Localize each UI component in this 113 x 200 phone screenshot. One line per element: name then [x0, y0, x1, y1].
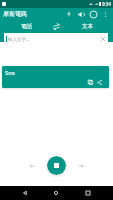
button[interactable]: Recents — [82, 187, 94, 199]
button[interactable]: Home — [50, 187, 62, 199]
button[interactable]: Previous — [26, 160, 38, 172]
button[interactable]: Back — [19, 187, 31, 199]
button[interactable]: Share — [96, 79, 103, 86]
staticText: 文本 — [82, 23, 93, 30]
button[interactable]: More options — [99, 8, 111, 20]
staticText: Sos — [5, 69, 15, 77]
button[interactable]: Swap languages — [52, 20, 61, 32]
button[interactable]: Copy — [87, 79, 94, 86]
button[interactable]: Next — [75, 160, 87, 172]
staticText: 摩斯電碼 — [3, 10, 27, 18]
button[interactable]: Flash — [63, 8, 75, 20]
button[interactable]: Sos — [2, 66, 109, 88]
button[interactable]: Stop — [47, 156, 66, 175]
button[interactable]: Clear — [99, 35, 107, 43]
button[interactable]: Volume — [75, 8, 87, 20]
button[interactable]: Help — [87, 8, 99, 20]
staticText: 9:34 — [102, 1, 111, 7]
button[interactable]: 電話 — [0, 20, 52, 32]
button[interactable]: 文本 — [61, 20, 113, 32]
staticText: 輸入文字… — [8, 36, 30, 42]
staticText: 電話 — [21, 23, 32, 30]
